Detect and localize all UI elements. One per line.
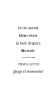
staticText: Revisa tu cuenta [17, 62, 38, 66]
staticText: Tu cuenta ya está lista [21, 57, 35, 58]
staticText: ¿Llegó el momento? [13, 70, 43, 73]
staticText: Activar ahora [18, 34, 37, 37]
staticText: Lo haré después [16, 42, 40, 45]
staticText: Más tarde [21, 49, 35, 53]
staticText: Ver mi cuenta [17, 26, 38, 30]
